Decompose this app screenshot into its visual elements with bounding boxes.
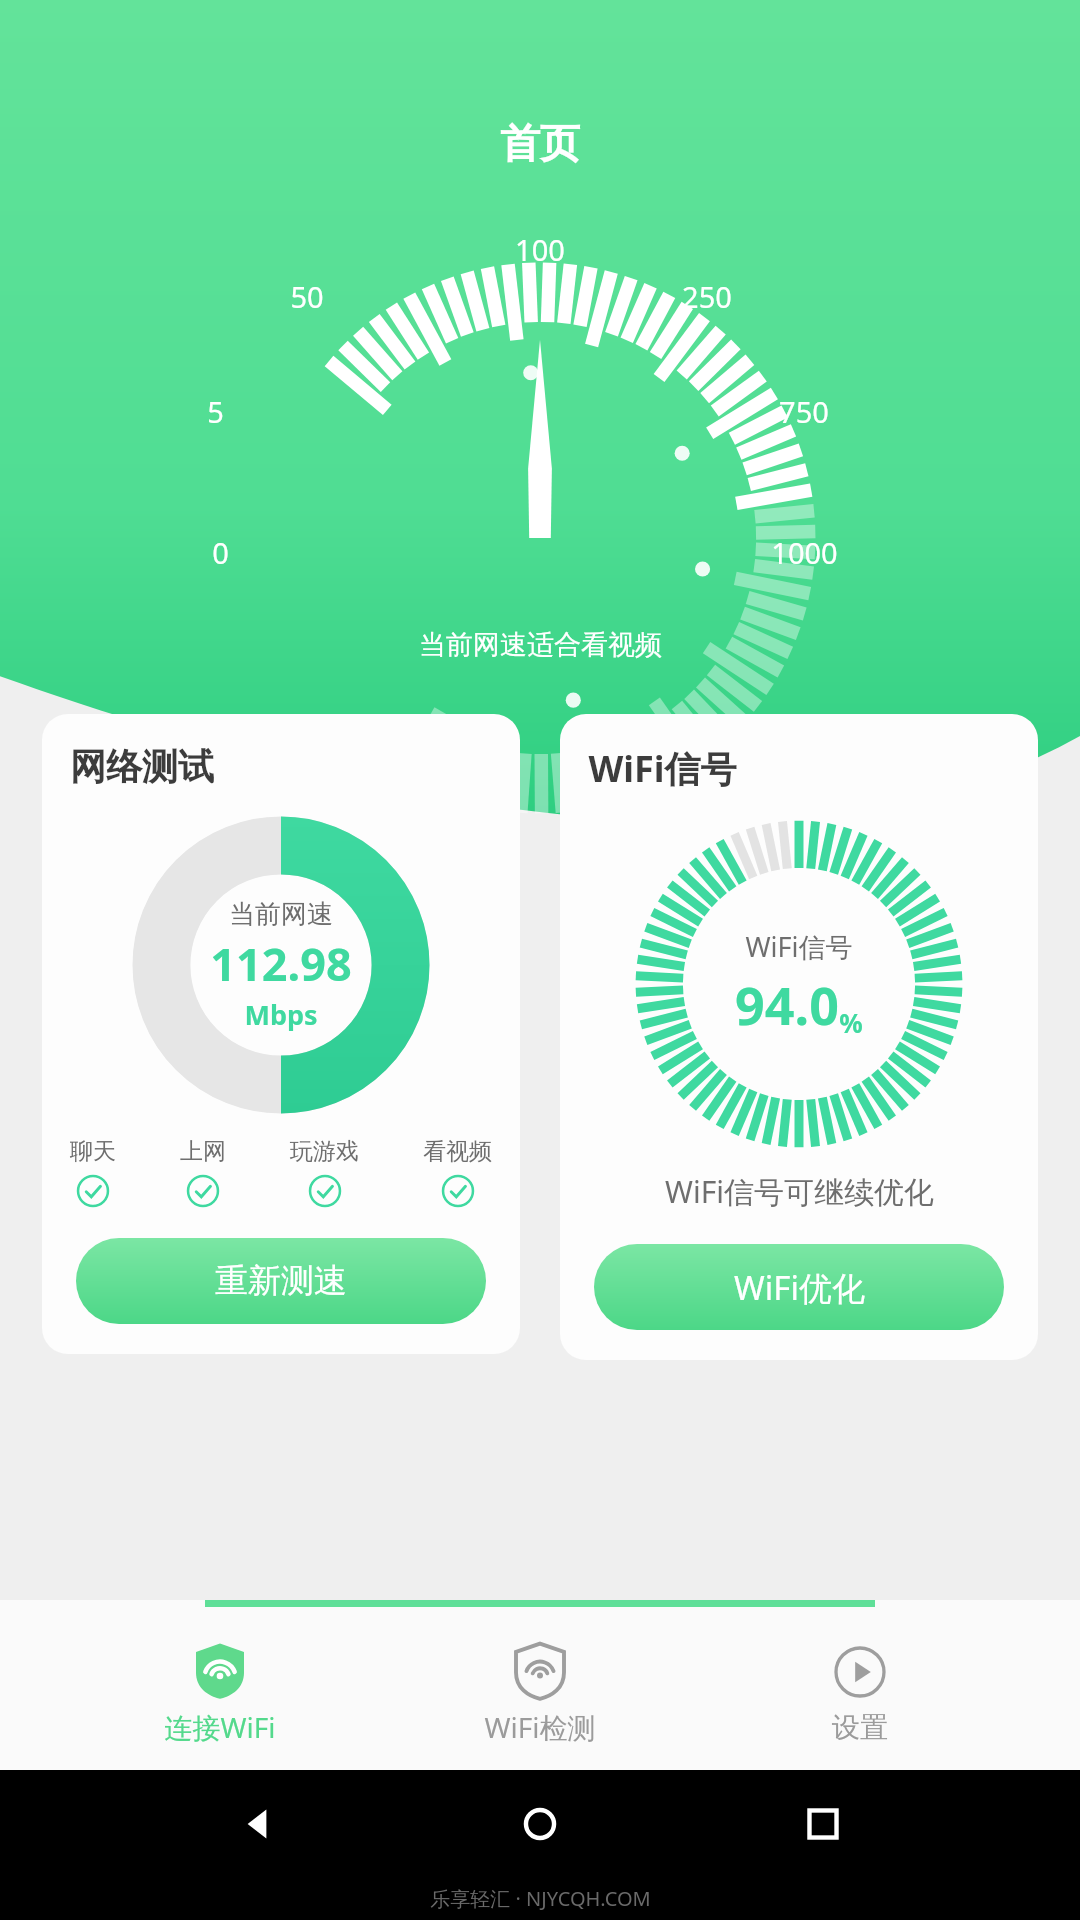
- staticText: 1000: [771, 533, 838, 572]
- button[interactable]: 设置: [760, 1636, 960, 1751]
- button[interactable]: 重新测速: [76, 1238, 486, 1324]
- staticText: WiFi信号: [745, 928, 853, 965]
- staticText: 玩游戏: [290, 1137, 359, 1166]
- staticText: 5: [207, 392, 224, 431]
- staticText: WiFi检测: [484, 1708, 596, 1746]
- staticText: 250: [682, 277, 732, 316]
- other: 连接WiFi: [190, 1640, 250, 1700]
- staticText: 50: [290, 277, 324, 316]
- other: WiFi检测: [510, 1640, 570, 1700]
- staticText: WiFi优化: [734, 1265, 865, 1310]
- button[interactable]: WiFi检测: [440, 1634, 640, 1752]
- staticText: WiFi信号可继续优化: [665, 1171, 934, 1212]
- staticText: 看视频: [423, 1137, 492, 1166]
- other: Recents: [797, 1798, 849, 1850]
- button[interactable]: WiFi信号: [560, 714, 1038, 1360]
- staticText: Mbps: [244, 996, 318, 1033]
- staticText: 当前网速: [229, 898, 333, 931]
- staticText: 100: [515, 230, 565, 269]
- staticText: 乐享轻汇 · NJYCQH.COM: [430, 1885, 651, 1912]
- other: Home: [514, 1798, 566, 1850]
- other: Back: [231, 1798, 283, 1850]
- staticText: 重新测速: [215, 1260, 347, 1302]
- other: 设置: [830, 1642, 890, 1702]
- staticText: 当前网速适合看视频: [419, 628, 662, 662]
- staticText: 首页: [500, 118, 580, 168]
- staticText: 聊天: [70, 1137, 116, 1166]
- staticText: 设置: [832, 1710, 888, 1745]
- staticText: 750: [779, 392, 829, 431]
- staticText: 网络测试: [70, 744, 214, 789]
- button[interactable]: 连接WiFi: [120, 1634, 320, 1752]
- staticText: 112.98: [210, 933, 352, 994]
- button[interactable]: 网络测试: [42, 714, 520, 1354]
- staticText: %: [839, 1005, 863, 1040]
- staticText: 上网: [180, 1137, 226, 1166]
- staticText: 0: [212, 533, 229, 572]
- staticText: 94.0: [735, 969, 839, 1040]
- staticText: WiFi信号: [588, 744, 737, 793]
- staticText: 连接WiFi: [164, 1708, 276, 1746]
- button[interactable]: WiFi优化: [594, 1244, 1004, 1330]
